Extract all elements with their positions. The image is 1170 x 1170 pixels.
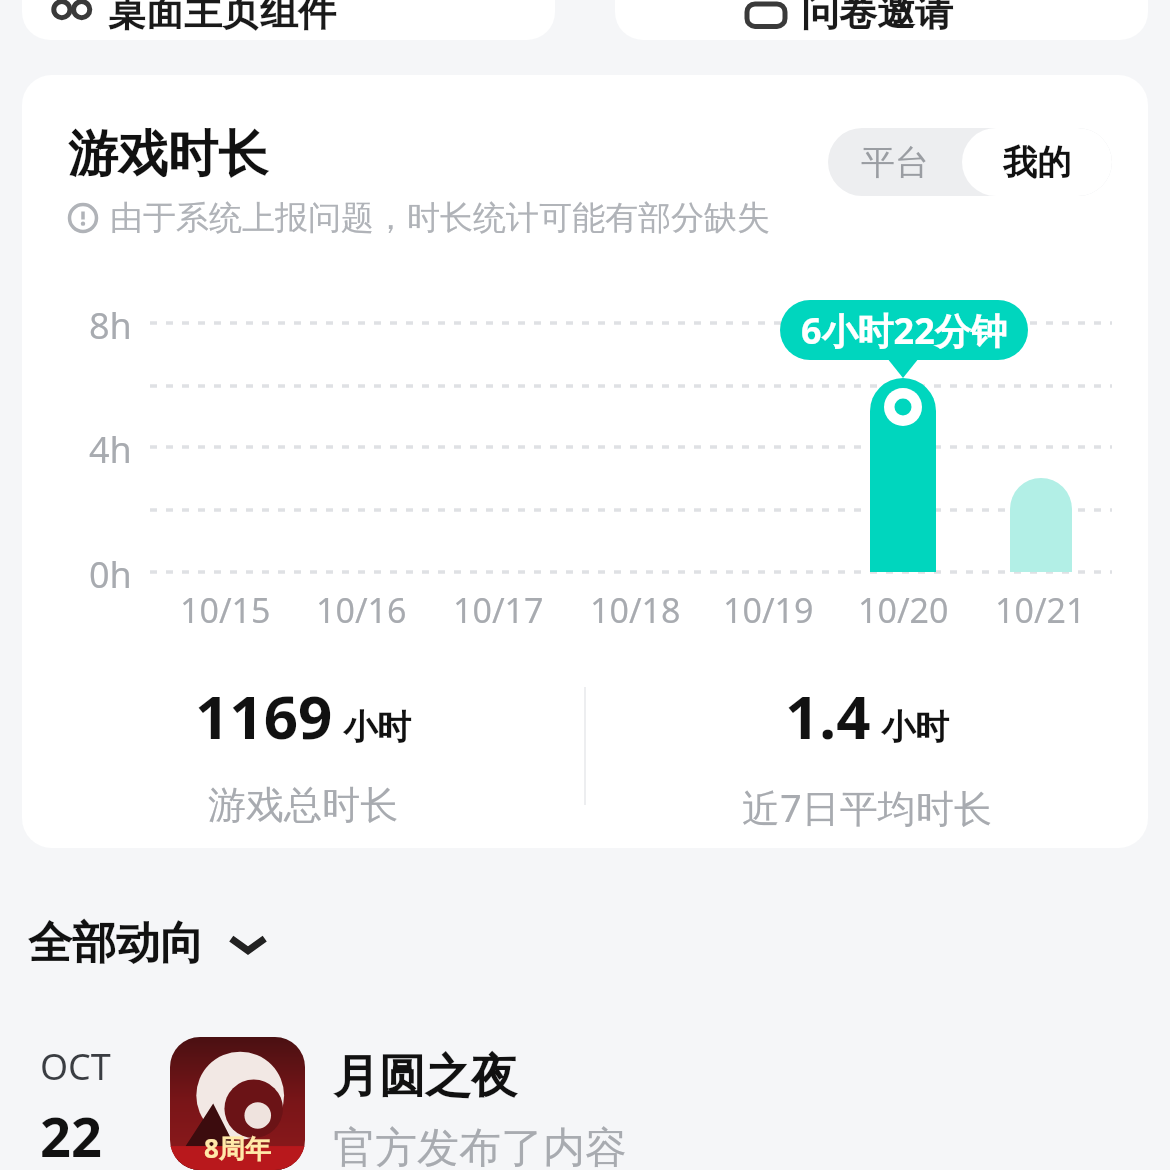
staticText: 8周年 (204, 1130, 271, 1166)
staticText: 0h (89, 550, 132, 599)
staticText: 问卷邀请 (801, 0, 953, 36)
staticText: 月圆之夜 (333, 1048, 517, 1106)
staticText: 10/20 (858, 587, 949, 633)
button[interactable]: 问卷邀请 (615, 0, 1148, 40)
button[interactable]: OCT (0, 1030, 1170, 1170)
button[interactable]: 桌面主页组件 (22, 0, 555, 40)
staticText: 近7日平均时长 (742, 781, 992, 833)
staticText: 10/16 (316, 587, 407, 633)
button[interactable]: 我的 (962, 128, 1112, 196)
staticText: 我的 (1003, 141, 1071, 184)
staticText: 桌面主页组件 (108, 0, 336, 36)
staticText: 6小时22分钟 (801, 306, 1007, 355)
staticText: 10/17 (453, 587, 544, 633)
staticText: 10/21 (995, 587, 1086, 633)
staticText: 10/19 (723, 587, 814, 633)
staticText: 8h (89, 301, 132, 350)
staticText: 官方发布了内容 (333, 1122, 627, 1170)
staticText: 10/15 (180, 587, 271, 633)
other: Expand (226, 929, 270, 959)
staticText: 平台 (861, 141, 929, 184)
staticText: 4h (89, 425, 132, 474)
button[interactable]: 1169 (22, 675, 584, 829)
button[interactable]: 平台 (828, 128, 962, 196)
staticText: 小时 (343, 706, 411, 749)
button[interactable]: 全部动向 (28, 916, 270, 971)
staticText: OCT (40, 1042, 111, 1091)
staticText: 1169 (195, 675, 333, 757)
staticText: 10/18 (590, 587, 681, 633)
staticText: 小时 (881, 706, 949, 749)
staticText: 由于系统上报问题，时长统计可能有部分缺失 (110, 197, 770, 239)
button[interactable]: 1.4 (586, 675, 1148, 833)
staticText: 游戏时长 (68, 123, 268, 186)
staticText: 游戏总时长 (208, 781, 398, 829)
staticText: 1.4 (785, 675, 871, 757)
staticText: 22 (40, 1099, 102, 1170)
staticText: 全部动向 (28, 916, 204, 971)
